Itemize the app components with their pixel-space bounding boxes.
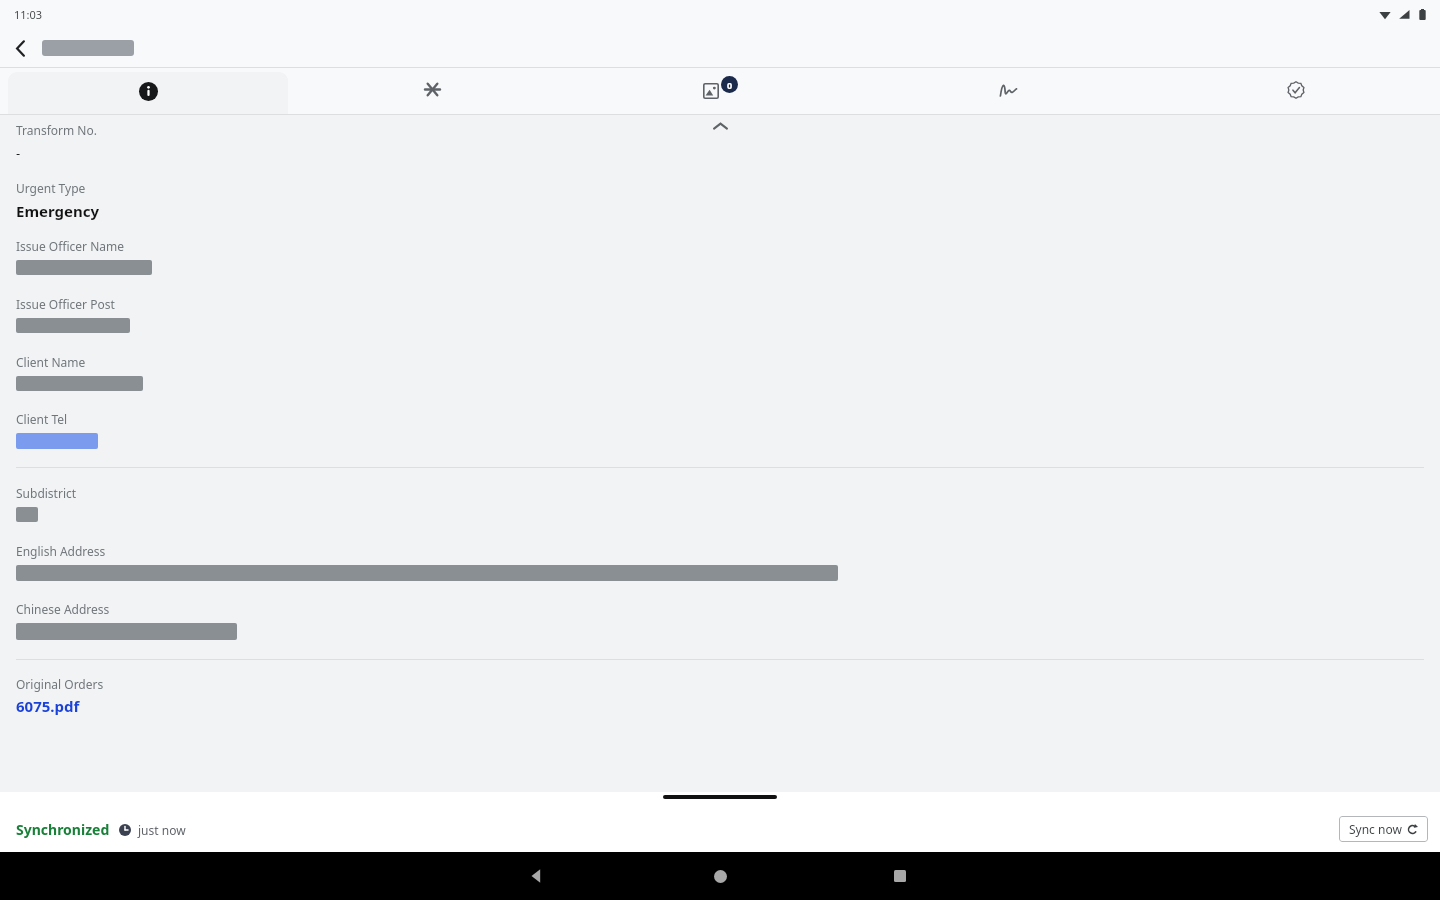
button[interactable]: Back [518,858,554,894]
staticText: - [16,144,21,162]
button[interactable]: Home [702,858,738,894]
staticText: English Address [16,543,106,559]
staticText: Issue Officer Name [16,238,125,254]
button[interactable]: Back [0,28,40,68]
button[interactable]: Recents [882,858,918,894]
staticText: 0 [727,79,733,91]
staticText: Original Orders [16,676,104,692]
button[interactable]: Photos [576,68,864,115]
button[interactable]: Sync now [1339,816,1428,842]
staticText: Synchronized [16,820,110,839]
staticText: Emergency [16,201,100,221]
button[interactable]: Signature [864,68,1152,115]
staticText: 6075.pdf [16,696,80,716]
staticText: 11:03 [14,7,43,22]
staticText: Sync now [1349,821,1402,837]
staticText: just now [138,822,186,838]
button[interactable]: 6075.pdf [16,696,80,716]
button[interactable]: Tools [288,68,576,115]
staticText: Transform No. [16,122,97,138]
staticText: Client Name [16,354,86,370]
staticText: Issue Officer Post [16,296,115,312]
button[interactable]: Collapse [698,115,742,137]
staticText: Client Tel [16,411,68,427]
staticText: Subdistrict [16,485,77,501]
button[interactable]: Details [8,72,288,115]
staticText: Chinese Address [16,601,110,617]
button[interactable]: Verify [1152,68,1440,115]
staticText: Urgent Type [16,180,86,196]
